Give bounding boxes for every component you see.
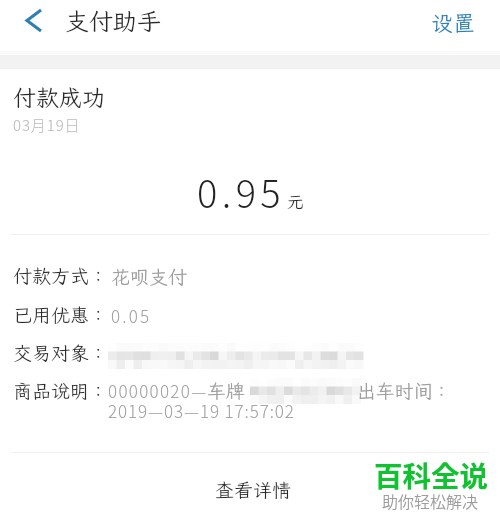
staticText: 交易对象： (13, 340, 109, 365)
staticText: 车牌 (207, 378, 246, 403)
staticText: 付款成功 (13, 82, 105, 112)
staticText: 支付助手 (65, 5, 161, 37)
button[interactable]: 查看详情 (215, 477, 292, 502)
button[interactable]: 设置 (431, 8, 476, 37)
staticText: 出车时间： (357, 378, 452, 403)
staticText: 已用优惠： (13, 302, 109, 327)
staticText: 0.95 (197, 164, 286, 219)
staticText: 助你轻松解决 (382, 489, 479, 512)
staticText: 03月19日 (13, 114, 81, 136)
staticText: 商品说明： (13, 378, 109, 403)
button[interactable]: Back (10, 0, 58, 41)
staticText: 元 (287, 190, 304, 212)
staticText: 2019—03—19 17:57:02 (108, 398, 295, 423)
staticText: 花呗支付 (111, 264, 188, 289)
staticText: 查看详情 (215, 477, 292, 502)
staticText: 设置 (431, 8, 476, 37)
staticText: 0.05 (111, 303, 152, 328)
staticText: 付款方式： (13, 263, 109, 288)
staticText: 00000020— (108, 378, 208, 403)
staticText: 百科全说 (374, 454, 489, 495)
